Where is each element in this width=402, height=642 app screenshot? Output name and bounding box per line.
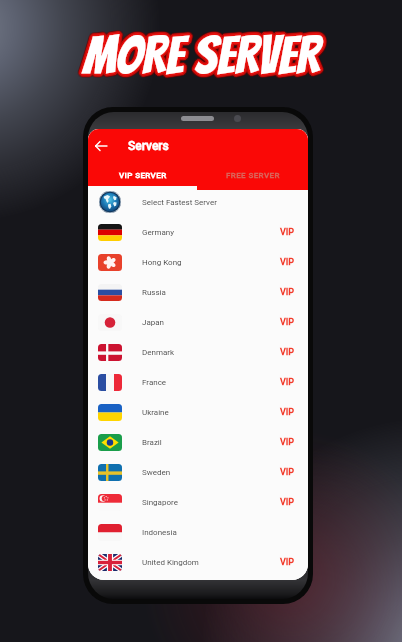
staticText: Servers [128, 139, 169, 153]
staticText: MORE SERVER [84, 28, 321, 84]
staticText: MORE SERVER [81, 24, 318, 80]
staticText: VIP [280, 317, 295, 328]
staticText: France [142, 378, 167, 387]
staticText: MORE SERVER [83, 26, 320, 82]
staticText: MORE SERVER [83, 24, 320, 80]
staticText: MORE SERVER [80, 26, 317, 82]
staticText: Indonesia [142, 528, 177, 537]
button[interactable]: VIP SERVER [88, 165, 198, 186]
staticText: MORE SERVER [83, 25, 320, 81]
staticText: VIP [280, 257, 295, 268]
button[interactable]: Sweden [88, 457, 308, 487]
button[interactable]: France [88, 367, 308, 397]
staticText: VIP [280, 347, 295, 358]
button[interactable]: Japan [88, 307, 308, 337]
staticText: Japan [142, 318, 165, 327]
staticText: Germany [142, 228, 174, 237]
staticText: MORE SERVER [87, 28, 324, 84]
staticText: VIP [280, 287, 295, 298]
staticText: MORE SERVER [84, 28, 321, 84]
staticText: MORE SERVER [84, 30, 321, 86]
staticText: MORE SERVER [80, 25, 317, 81]
staticText: MORE SERVER [82, 27, 319, 83]
staticText: MORE SERVER [86, 28, 323, 84]
staticText: MORE SERVER [83, 31, 320, 87]
button[interactable]: Russia [88, 277, 308, 307]
button[interactable]: FREE SERVER [198, 165, 308, 186]
staticText: MORE SERVER [82, 24, 319, 80]
button[interactable]: Singapore [88, 487, 308, 517]
staticText: MORE SERVER [81, 27, 318, 83]
staticText: MORE SERVER [82, 28, 319, 84]
button[interactable]: Hong Kong [88, 247, 308, 277]
staticText: MORE SERVER [83, 23, 320, 79]
staticText: MORE SERVER [84, 25, 321, 81]
staticText: MORE SERVER [83, 29, 320, 85]
staticText: MORE SERVER [79, 26, 316, 82]
staticText: MORE SERVER [86, 24, 323, 80]
staticText: MORE SERVER [82, 29, 319, 85]
staticText: MORE SERVER [83, 30, 320, 86]
button[interactable]: Select Fastest Server [88, 187, 308, 217]
staticText: MORE SERVER [85, 26, 322, 82]
staticText: Sweden [142, 468, 171, 477]
staticText: MORE SERVER [85, 25, 322, 81]
staticText: VIP [280, 227, 295, 238]
staticText: Brazil [142, 438, 162, 447]
staticText: MORE SERVER [80, 29, 317, 85]
staticText: VIP SERVER [119, 171, 167, 180]
staticText: MORE SERVER [82, 26, 319, 82]
staticText: VIP [280, 407, 295, 418]
button[interactable]: Germany [88, 217, 308, 247]
staticText: MORE SERVER [81, 28, 318, 84]
staticText: MORE SERVER [82, 31, 319, 87]
staticText: MORE SERVER [80, 28, 317, 84]
staticText: MORE SERVER [81, 26, 318, 82]
staticText: MORE SERVER [82, 30, 319, 86]
staticText: Russia [142, 288, 166, 297]
staticText: MORE SERVER [86, 26, 323, 82]
button[interactable]: Brazil [88, 427, 308, 457]
staticText: MORE SERVER [84, 30, 321, 86]
staticText: VIP [280, 377, 295, 388]
staticText: MORE SERVER [84, 26, 321, 82]
staticText: MORE SERVER [82, 30, 319, 86]
staticText: MORE SERVER [79, 27, 316, 83]
staticText: Select Fastest Server [142, 198, 217, 207]
staticText: MORE SERVER [80, 24, 317, 80]
staticText: MORE SERVER [84, 26, 321, 82]
staticText: MORE SERVER [84, 23, 321, 79]
staticText: MORE SERVER [87, 26, 324, 82]
staticText: MORE SERVER [84, 27, 321, 83]
staticText: Hong Kong [142, 258, 182, 267]
staticText: MORE SERVER [85, 24, 322, 80]
staticText: MORE SERVER [86, 29, 323, 85]
staticText: VIP [280, 557, 295, 568]
staticText: MORE SERVER [85, 30, 322, 86]
staticText: FREE SERVER [226, 171, 280, 180]
staticText: MORE SERVER [81, 27, 318, 83]
staticText: MORE SERVER [83, 28, 320, 84]
staticText: MORE SERVER [86, 27, 323, 83]
button[interactable]: Ukraine [88, 397, 308, 427]
button[interactable]: Denmark [88, 337, 308, 367]
staticText: MORE SERVER [84, 24, 321, 80]
staticText: MORE SERVER [80, 30, 317, 86]
staticText: MORE SERVER [82, 28, 319, 84]
staticText: MORE SERVER [82, 24, 319, 80]
staticText: MORE SERVER [83, 26, 320, 82]
staticText: United Kingdom [142, 558, 199, 567]
button[interactable]: Back [92, 137, 110, 155]
staticText: MORE SERVER [85, 29, 322, 85]
staticText: MORE SERVER [80, 26, 317, 82]
button[interactable]: Indonesia [88, 517, 308, 547]
staticText: MORE SERVER [85, 28, 322, 84]
staticText: Denmark [142, 348, 175, 357]
staticText: MORE SERVER [82, 26, 319, 82]
staticText: VIP [280, 437, 295, 448]
staticText: VIP [280, 467, 295, 478]
staticText: MORE SERVER [83, 27, 320, 83]
staticText: MORE SERVER [87, 27, 324, 83]
button[interactable]: United Kingdom [88, 547, 308, 577]
staticText: MORE SERVER [85, 27, 322, 83]
